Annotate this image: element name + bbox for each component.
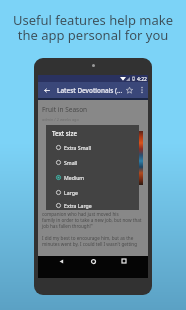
staticText: Medium xyxy=(64,174,85,181)
staticText: Latest Devotionals (... xyxy=(57,86,123,95)
staticText: minutes went by, I could tell I wasn't g… xyxy=(42,241,138,247)
button[interactable]: Extra Large xyxy=(46,200,139,210)
staticText: Extra Large xyxy=(64,202,92,209)
button[interactable]: Home xyxy=(82,256,104,266)
button[interactable]: Small xyxy=(46,155,139,170)
button[interactable]: Recents xyxy=(113,256,135,266)
button[interactable]: Favorite xyxy=(122,82,136,98)
button[interactable]: Back xyxy=(40,82,54,98)
button[interactable]: More options xyxy=(136,82,148,98)
staticText: family in order to take a new job, but n… xyxy=(42,217,142,223)
staticText: 4:22 xyxy=(137,76,147,83)
staticText: companion who had just moved his xyxy=(42,211,119,217)
staticText: Extra Small xyxy=(64,144,92,151)
staticText: Small xyxy=(64,159,78,166)
button[interactable]: Extra Small xyxy=(46,140,139,155)
button[interactable]: Back xyxy=(50,256,72,266)
button[interactable]: Large xyxy=(46,185,139,200)
staticText: Useful features help make the app person… xyxy=(13,11,173,44)
staticText: admin / 2 weeks ago xyxy=(42,117,79,122)
staticText: Text size xyxy=(52,129,77,137)
staticText: Large xyxy=(64,189,78,196)
staticText: Fruit in Season xyxy=(42,105,88,114)
staticText: I did my best to encourage him, but as t… xyxy=(42,235,134,241)
staticText: job has fallen through!" xyxy=(42,223,93,229)
button[interactable]: Medium xyxy=(46,170,139,185)
